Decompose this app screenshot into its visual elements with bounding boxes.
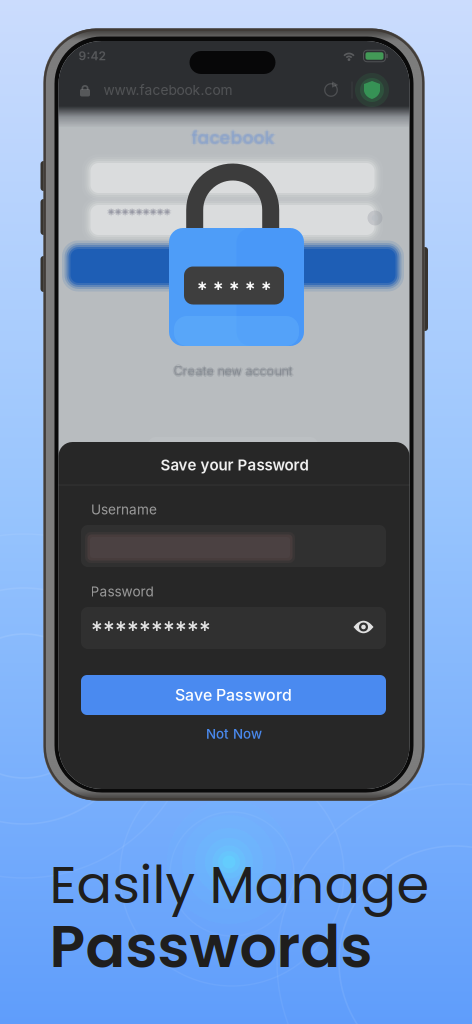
staticText: ********* <box>107 206 170 223</box>
staticText: Username <box>91 501 157 518</box>
staticText: ********** <box>91 616 211 644</box>
staticText: Create new account <box>173 365 292 380</box>
staticText: ∗ ∗ ∗ ∗ ∗ <box>196 278 271 293</box>
staticText: Create new account <box>172 363 291 379</box>
staticText: Passwords <box>49 905 372 987</box>
button[interactable]: Save Password <box>81 675 386 715</box>
staticText: Password <box>90 583 153 600</box>
staticText: 9:42 <box>78 49 105 63</box>
staticText: Save your Password <box>160 456 308 474</box>
staticText: facebook <box>190 126 273 150</box>
staticText: facebook <box>191 127 274 151</box>
staticText: Create new account <box>173 362 292 377</box>
staticText: Create new account <box>175 363 294 379</box>
staticText: facebook <box>191 125 274 149</box>
staticText: facebook <box>193 126 276 150</box>
staticText: Save Password <box>175 685 292 705</box>
button[interactable]: Not Now <box>174 721 294 747</box>
staticText: ********* <box>107 208 170 225</box>
staticText: facebook <box>191 126 274 150</box>
staticText: Create new account <box>173 363 292 379</box>
staticText: Not Now <box>206 726 262 742</box>
staticText: ********* <box>107 205 170 222</box>
button[interactable]: Show password <box>346 610 380 644</box>
staticText: ********* <box>109 206 172 223</box>
staticText: ********* <box>106 206 169 223</box>
staticText: Easily Manage <box>49 848 429 921</box>
staticText: www.facebook.com <box>103 82 232 98</box>
